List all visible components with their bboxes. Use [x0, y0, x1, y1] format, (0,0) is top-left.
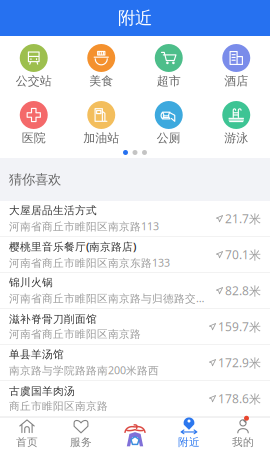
button[interactable]: 我的	[216, 417, 270, 450]
staticText: 河南省商丘市睢阳区南京路	[9, 328, 141, 341]
staticText: 超市	[157, 74, 181, 88]
button[interactable]: 首页	[0, 417, 54, 450]
staticText: 大屋居品生活方式	[9, 204, 97, 217]
button[interactable]: 公厕	[135, 101, 202, 147]
staticText: 21.7米	[225, 211, 261, 227]
button[interactable]: 单县羊汤馆	[0, 345, 270, 381]
staticText: 公交站	[16, 74, 52, 88]
staticText: 樱桃里音乐餐厅(南京路店)	[9, 239, 136, 254]
staticText: 商丘市睢阳区南京路	[9, 400, 108, 413]
button[interactable]: 超市	[135, 44, 202, 90]
staticText: 猜你喜欢	[9, 171, 61, 188]
button[interactable]: 锦川火锅	[0, 273, 270, 309]
button[interactable]: 发现	[108, 417, 162, 450]
staticText: 单县羊汤馆	[9, 348, 64, 361]
button[interactable]: 滋补脊骨刀削面馆	[0, 309, 270, 345]
staticText: 首页	[16, 436, 38, 449]
staticText: 古虞国羊肉汤	[9, 384, 75, 398]
staticText: 锦川火锅	[9, 276, 53, 289]
staticText: 加油站	[83, 131, 119, 145]
staticText: 159.7米	[218, 319, 261, 335]
button[interactable]: 服务	[54, 417, 108, 450]
staticText: 医院	[22, 131, 46, 145]
staticText: 178.6米	[218, 391, 261, 407]
button[interactable]: 游泳	[202, 101, 270, 147]
staticText: 河南省商丘市睢阳区南京东路133	[9, 256, 170, 270]
staticText: 南京路与学院路路南200米路西	[9, 363, 159, 377]
staticText: 附近	[118, 7, 152, 29]
staticText: 公厕	[157, 131, 181, 145]
button[interactable]: 附近	[0, 0, 270, 36]
staticText: 我的	[232, 436, 254, 449]
staticText: 河南省商丘市睢阳区南京路与归德路交…	[9, 291, 204, 305]
button[interactable]: 酒店	[202, 44, 270, 90]
staticText: 服务	[70, 436, 92, 449]
staticText: 滋补脊骨刀削面馆	[9, 312, 97, 326]
button[interactable]: 加油站	[67, 101, 135, 147]
staticText: 河南省商丘市睢阳区南京路113	[9, 219, 159, 233]
button[interactable]: 美食	[67, 44, 135, 90]
button[interactable]: 医院	[0, 101, 67, 147]
staticText: 70.1米	[225, 247, 261, 263]
button[interactable]: 樱桃里音乐餐厅(南京路店)	[0, 237, 270, 273]
button[interactable]: 公交站	[0, 44, 67, 90]
button[interactable]: 大屋居品生活方式	[0, 201, 270, 237]
button[interactable]: 古虞国羊肉汤	[0, 381, 270, 417]
staticText: 游泳	[224, 131, 248, 145]
button[interactable]: 附近	[162, 417, 216, 450]
staticText: 82.8米	[225, 283, 261, 299]
staticText: 美食	[89, 74, 113, 88]
staticText: 172.9米	[218, 355, 261, 371]
staticText: 酒店	[224, 74, 248, 88]
staticText: 附近	[178, 436, 200, 449]
